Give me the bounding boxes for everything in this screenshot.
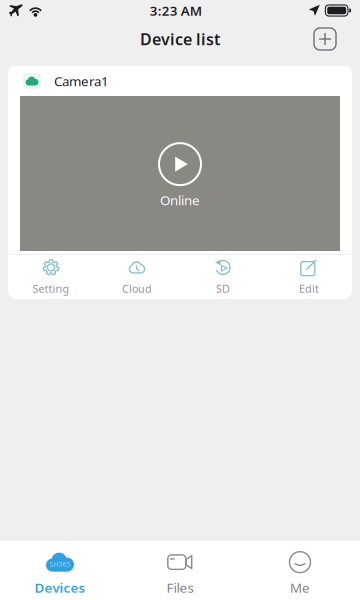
staticText: Device list	[140, 28, 220, 50]
button[interactable]: Me	[240, 541, 360, 600]
staticText: SD	[216, 281, 230, 296]
staticText: Cloud	[122, 281, 152, 296]
staticText: Files	[166, 579, 193, 596]
button[interactable]: Setting	[8, 254, 94, 299]
staticText: Camera1	[54, 72, 109, 90]
button[interactable]: SH365	[0, 541, 120, 600]
staticText: Devices	[34, 579, 85, 596]
staticText: 3:23 AM	[150, 2, 202, 19]
staticText: SH365	[49, 560, 70, 569]
button[interactable]: Add device	[307, 22, 343, 56]
button[interactable]: Files	[120, 541, 240, 600]
button[interactable]: Cloud	[94, 254, 180, 299]
staticText: Me	[290, 579, 310, 596]
staticText: Online	[160, 191, 200, 209]
staticText: Setting	[32, 281, 69, 296]
staticText: Edit	[299, 281, 319, 296]
button[interactable]: SD	[180, 254, 266, 299]
button[interactable]: Edit	[266, 254, 352, 299]
